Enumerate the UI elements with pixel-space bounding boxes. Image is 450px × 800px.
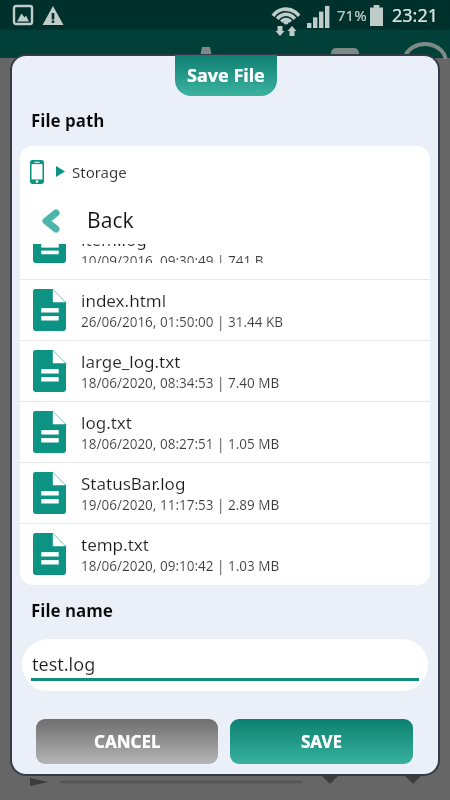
- staticText: index.html: [81, 289, 167, 312]
- staticText: large_log.txt: [81, 350, 181, 373]
- staticText: File path: [31, 109, 105, 132]
- button[interactable]: large_log.txt: [20, 341, 430, 401]
- staticText: 19/06/2020, 11:17:53 | 2.89 MB: [81, 496, 280, 514]
- button[interactable]: index.html: [20, 280, 430, 340]
- staticText: temp.txt: [81, 533, 149, 556]
- staticText: Save File: [187, 63, 265, 88]
- staticText: Storage: [72, 162, 127, 182]
- button[interactable]: Save File: [175, 55, 277, 96]
- staticText: 26/06/2016, 01:50:00 | 31.44 KB: [81, 313, 284, 331]
- staticText: CANCEL: [94, 730, 161, 753]
- button[interactable]: Storage: [20, 146, 430, 197]
- staticText: test.log: [32, 652, 96, 677]
- staticText: Back: [87, 206, 134, 235]
- staticText: StatusBar.log: [81, 472, 186, 495]
- button[interactable]: Back: [20, 197, 430, 244]
- staticText: 23:21: [392, 3, 439, 28]
- button[interactable]: CANCEL: [36, 719, 218, 764]
- button[interactable]: test.log: [22, 639, 428, 691]
- button[interactable]: SAVE: [230, 719, 413, 764]
- staticText: 71%: [337, 5, 367, 25]
- button[interactable]: item.log: [20, 244, 430, 263]
- staticText: 18/06/2020, 09:10:42 | 1.03 MB: [81, 557, 280, 575]
- button[interactable]: temp.txt: [20, 524, 430, 584]
- staticText: 10/09/2016, 09:30:49 | 741 B: [81, 252, 264, 263]
- staticText: SAVE: [301, 730, 343, 753]
- staticText: 18/06/2020, 08:34:53 | 7.40 MB: [81, 374, 280, 392]
- staticText: File name: [31, 599, 114, 622]
- button[interactable]: log.txt: [20, 402, 430, 462]
- other: Back: [42, 210, 59, 232]
- staticText: item.log: [81, 244, 147, 251]
- button[interactable]: StatusBar.log: [20, 463, 430, 523]
- staticText: 18/06/2020, 08:27:51 | 1.05 MB: [81, 435, 280, 453]
- staticText: log.txt: [81, 411, 132, 434]
